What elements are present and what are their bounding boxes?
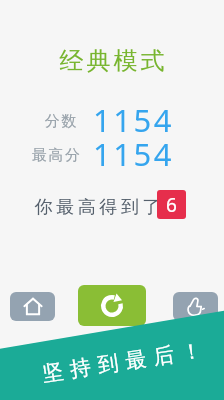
staticText: 经典模式: [58, 46, 166, 76]
button[interactable]: [78, 285, 146, 326]
staticText: 6: [166, 192, 177, 218]
button[interactable]: 6: [157, 190, 186, 219]
staticText: 分数: [44, 112, 77, 131]
button[interactable]: 坚持到最后！: [18, 346, 224, 378]
staticText: 1154: [93, 133, 174, 169]
staticText: 1154: [93, 99, 174, 135]
button[interactable]: [173, 292, 218, 321]
staticText: 最高分: [32, 146, 82, 165]
button[interactable]: [10, 292, 55, 321]
staticText: 坚持到最后！: [37, 337, 207, 387]
staticText: 你最高得到了: [33, 196, 162, 219]
